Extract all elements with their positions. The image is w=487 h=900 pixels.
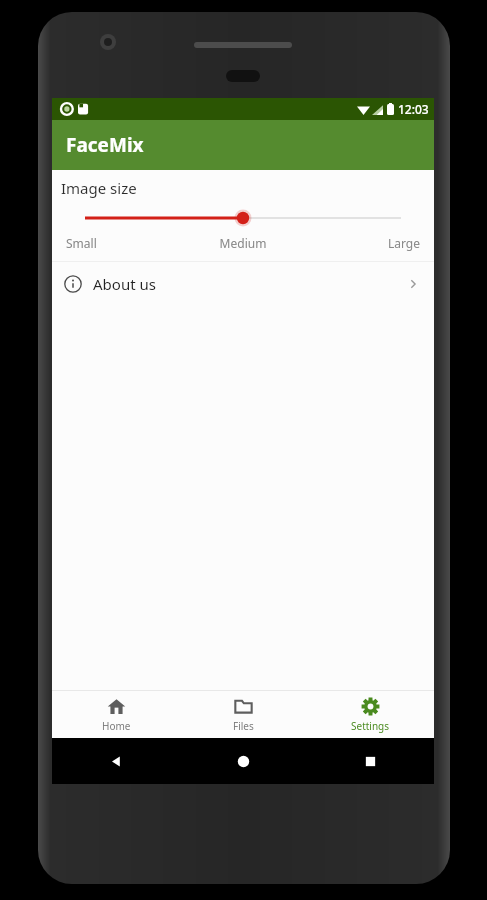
button[interactable]: About us	[52, 262, 434, 306]
staticText: FaceMix	[66, 132, 144, 158]
staticText: Home	[102, 719, 131, 733]
staticText: About us	[93, 274, 406, 294]
staticText: Small	[66, 235, 184, 251]
staticText: 12:03	[398, 101, 429, 117]
button[interactable]: Settings	[307, 692, 434, 737]
button[interactable]: Files	[180, 692, 307, 737]
button[interactable]: Recent apps	[307, 738, 434, 784]
button[interactable]	[61, 207, 425, 229]
staticText: Image size	[61, 178, 137, 198]
button[interactable]: Back	[52, 738, 180, 784]
staticText: Files	[233, 719, 254, 733]
button[interactable]: Home	[52, 692, 180, 737]
staticText: Medium	[184, 235, 302, 251]
staticText: Settings	[351, 719, 390, 733]
button[interactable]: Home	[180, 738, 307, 784]
staticText: Large	[302, 235, 420, 251]
